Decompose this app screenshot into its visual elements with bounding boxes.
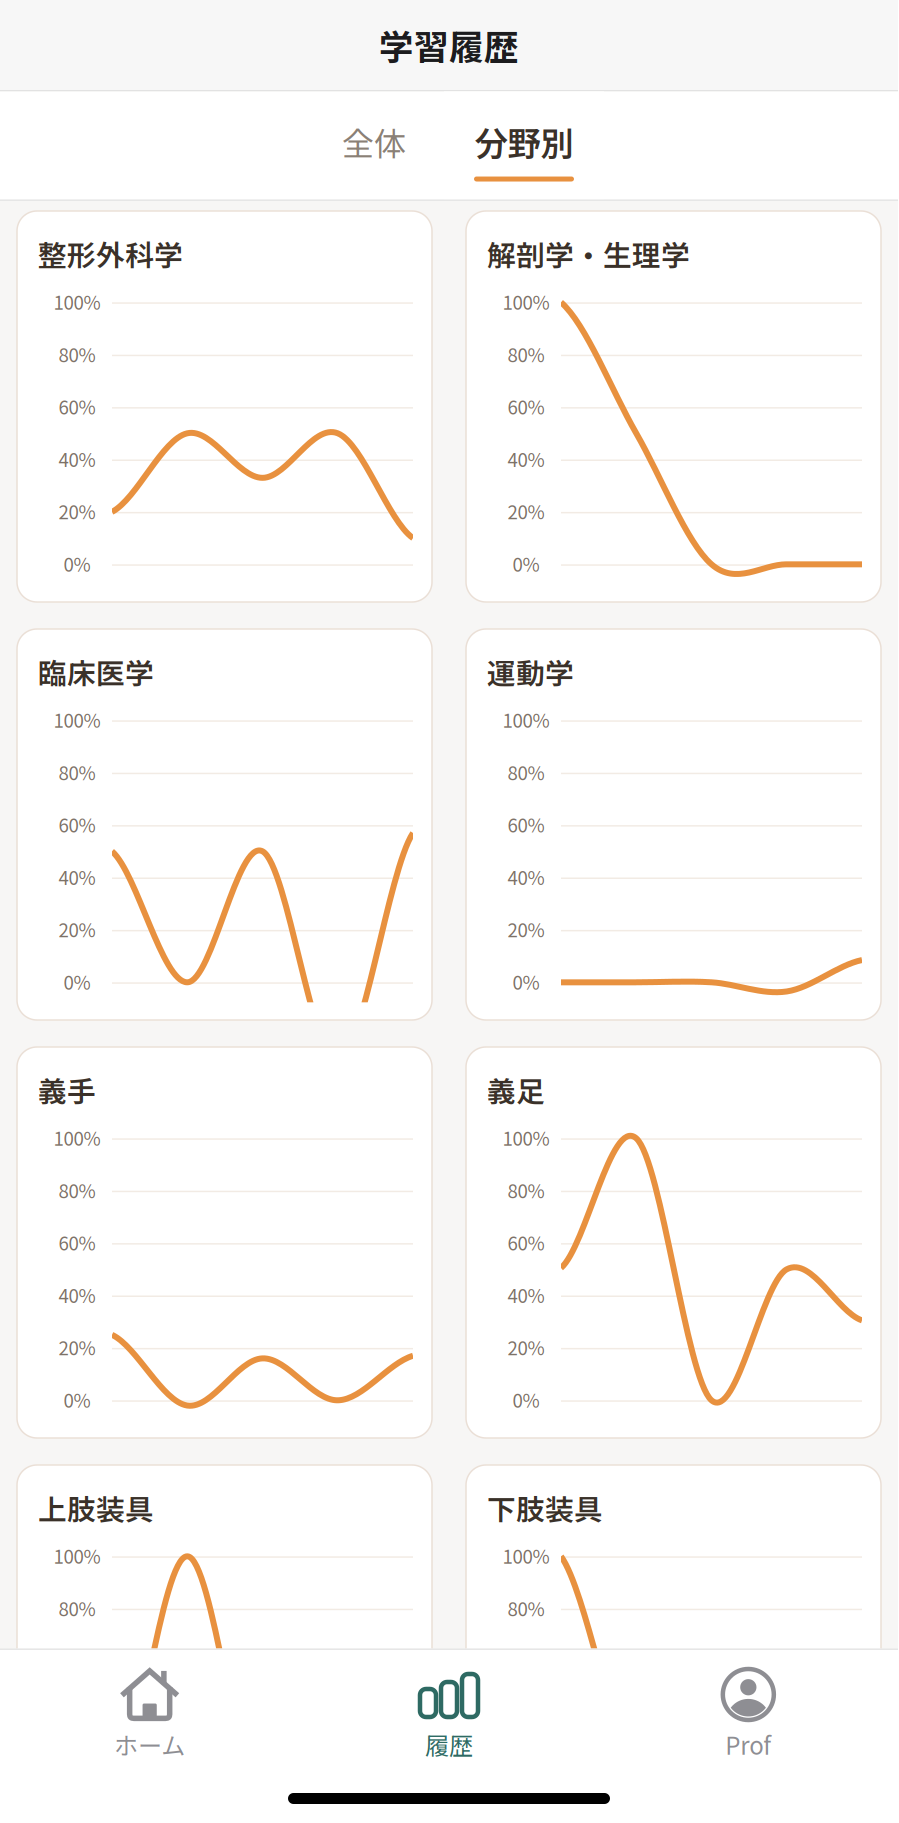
staticText: 40% <box>58 1281 95 1308</box>
staticText: Prof <box>725 1727 771 1762</box>
staticText: 全体 <box>342 118 406 165</box>
staticText: 60% <box>507 1647 544 1674</box>
button[interactable]: ホーム <box>0 1650 299 1772</box>
staticText: 60% <box>507 393 544 420</box>
staticText: 80% <box>58 758 95 785</box>
staticText: 20% <box>58 916 95 943</box>
staticText: 整形外科学 <box>38 233 183 274</box>
staticText: 60% <box>58 1229 95 1256</box>
staticText: 80% <box>58 1176 95 1203</box>
staticText: 履歴 <box>425 1727 473 1762</box>
button[interactable]: 分野別 <box>444 91 604 199</box>
staticText: 100% <box>502 288 549 315</box>
staticText: 0% <box>63 1386 90 1413</box>
staticText: 40% <box>58 863 95 890</box>
staticText: 義手 <box>38 1069 96 1110</box>
staticText: 臨床医学 <box>38 651 154 692</box>
staticText: 40% <box>507 1281 544 1308</box>
staticText: 60% <box>58 811 95 838</box>
staticText: 80% <box>507 1594 544 1621</box>
staticText: 80% <box>58 340 95 367</box>
staticText: 解剖学・生理学 <box>487 233 690 274</box>
staticText: 下肢装具 <box>487 1487 603 1528</box>
staticText: 20% <box>507 916 544 943</box>
staticText: 20% <box>507 498 544 525</box>
staticText: 40% <box>507 863 544 890</box>
staticText: 0% <box>512 550 539 577</box>
staticText: 0% <box>512 968 539 995</box>
staticText: 運動学 <box>487 651 574 692</box>
staticText: 100% <box>53 706 100 733</box>
staticText: 分野別 <box>474 117 573 166</box>
staticText: 20% <box>58 1334 95 1361</box>
staticText: 上肢装具 <box>38 1487 154 1528</box>
staticText: 0% <box>63 550 90 577</box>
staticText: 学習履歴 <box>379 20 519 70</box>
staticText: 100% <box>502 1542 549 1569</box>
staticText: 80% <box>507 758 544 785</box>
button[interactable]: Prof <box>599 1650 898 1772</box>
staticText: 100% <box>502 1124 549 1151</box>
staticText: 100% <box>53 1124 100 1151</box>
staticText: 100% <box>502 706 549 733</box>
staticText: 100% <box>53 1542 100 1569</box>
staticText: 20% <box>507 1334 544 1361</box>
staticText: 40% <box>507 445 544 472</box>
staticText: 義足 <box>487 1069 545 1110</box>
staticText: 80% <box>507 1176 544 1203</box>
staticText: 80% <box>58 1594 95 1621</box>
staticText: 100% <box>53 288 100 315</box>
staticText: 80% <box>507 340 544 367</box>
staticText: 60% <box>58 1647 95 1674</box>
staticText: 60% <box>58 393 95 420</box>
staticText: 0% <box>63 968 90 995</box>
staticText: 60% <box>507 811 544 838</box>
button[interactable]: 履歴 <box>299 1650 599 1772</box>
staticText: 20% <box>58 498 95 525</box>
staticText: ホーム <box>114 1727 185 1762</box>
button[interactable]: 全体 <box>309 91 439 191</box>
staticText: 60% <box>507 1229 544 1256</box>
staticText: 0% <box>512 1386 539 1413</box>
staticText: 40% <box>58 445 95 472</box>
